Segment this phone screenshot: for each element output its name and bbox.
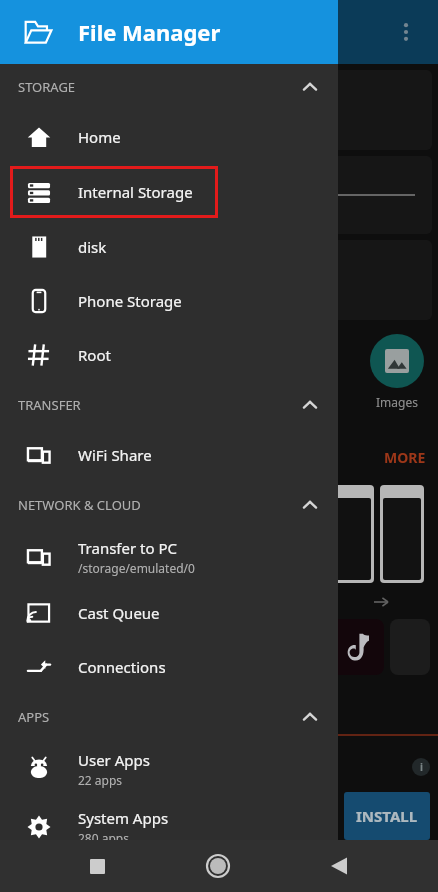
staticText: disk	[78, 237, 107, 257]
button[interactable]	[6, 156, 432, 234]
button[interactable]: WiFi Share	[0, 428, 338, 482]
button[interactable]	[6, 240, 432, 320]
button[interactable]: Transfer to PC	[0, 528, 338, 586]
staticText: MORE	[384, 448, 426, 467]
button[interactable]: User Apps	[0, 740, 338, 798]
button[interactable]: Connections	[0, 640, 338, 694]
staticText: NETWORK & CLOUD	[18, 496, 141, 514]
button[interactable]: More options	[386, 12, 426, 52]
staticText: TRANSFER	[18, 396, 81, 414]
button[interactable]: Home	[0, 110, 338, 164]
button[interactable]: MORE	[384, 448, 426, 467]
button[interactable]: Images	[370, 334, 424, 410]
button[interactable]: Open navigation	[18, 12, 58, 52]
staticText: Internal Storage	[78, 182, 193, 202]
staticText: Cast Queue	[78, 603, 160, 623]
button[interactable]	[6, 70, 432, 150]
button[interactable]: Home	[194, 842, 242, 890]
staticText: 280 apps	[78, 830, 129, 846]
staticText: Home	[78, 127, 121, 147]
button[interactable]: Cast Queue	[0, 586, 338, 640]
button[interactable]: INSTALL	[344, 792, 430, 840]
staticText: Root	[78, 345, 111, 365]
staticText: 22 apps	[78, 772, 123, 788]
button[interactable]: Back	[316, 842, 364, 890]
staticText: System Apps	[78, 808, 169, 828]
staticText: i	[420, 760, 423, 774]
button[interactable]: STORAGE	[0, 64, 338, 110]
button[interactable]: APPS	[0, 694, 338, 740]
staticText: WiFi Share	[78, 445, 152, 465]
button[interactable]: Root	[0, 328, 338, 382]
button[interactable]: Phone Storage	[0, 274, 338, 328]
button[interactable]: Internal Storage	[10, 166, 218, 218]
button[interactable]: disk	[0, 220, 338, 274]
button[interactable]: NETWORK & CLOUD	[0, 482, 338, 528]
staticText: User Apps	[78, 750, 150, 770]
staticText: Connections	[78, 657, 166, 677]
button[interactable]: Recents	[73, 842, 121, 890]
staticText: STORAGE	[18, 78, 76, 96]
staticText: Images	[376, 394, 418, 410]
staticText: Phone Storage	[78, 291, 182, 311]
staticText: /storage/emulated/0	[78, 560, 195, 576]
button[interactable]: System Apps	[0, 798, 338, 856]
staticText: APPS	[18, 708, 50, 726]
staticText: INSTALL	[356, 806, 418, 826]
staticText: Transfer to PC	[78, 538, 178, 558]
staticText: File Manager	[78, 17, 221, 47]
button[interactable]: TRANSFER	[0, 382, 338, 428]
